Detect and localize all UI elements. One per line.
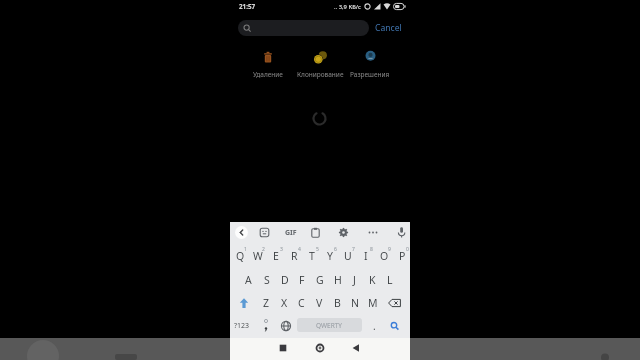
button[interactable]	[367, 227, 379, 238]
button[interactable]: T	[303, 246, 321, 266]
staticText: QWERTY	[316, 321, 343, 330]
staticText: B	[334, 296, 341, 310]
button[interactable]	[338, 227, 349, 238]
staticText: .	[373, 319, 376, 333]
button[interactable]	[234, 293, 254, 313]
button[interactable]: U	[339, 246, 357, 266]
staticText: Cancel	[375, 22, 402, 34]
button[interactable]: G	[311, 270, 328, 290]
staticText: Удаление	[253, 70, 283, 79]
staticText: K	[369, 273, 376, 287]
button[interactable]: J	[346, 270, 363, 290]
button[interactable]: F	[293, 270, 310, 290]
button[interactable]: H	[329, 270, 346, 290]
button[interactable]	[386, 316, 404, 336]
staticText: ?123	[234, 321, 250, 331]
staticText: 2	[262, 246, 265, 253]
staticText: I	[364, 249, 368, 263]
button[interactable]: L	[381, 270, 398, 290]
staticText: Разрешения	[350, 70, 390, 79]
button[interactable]	[310, 338, 330, 360]
staticText: T	[309, 249, 315, 263]
button[interactable]: O	[375, 246, 393, 266]
button[interactable]: N	[346, 293, 363, 313]
button[interactable]: D	[276, 270, 293, 290]
button[interactable]: Удаление	[244, 48, 292, 79]
staticText: U	[344, 249, 352, 263]
staticText: O	[380, 249, 389, 263]
button[interactable]: Cancel	[372, 21, 404, 35]
staticText: 1	[244, 246, 247, 253]
staticText: R	[291, 249, 298, 263]
staticText: 5	[316, 246, 319, 253]
staticText: E	[273, 249, 279, 263]
staticText: 7	[352, 246, 355, 253]
button[interactable]: K	[364, 270, 381, 290]
staticText: G	[316, 273, 324, 287]
button[interactable]: GIF	[282, 227, 300, 238]
staticText: Y	[327, 249, 333, 263]
button[interactable]: R	[285, 246, 303, 266]
staticText: Z	[263, 296, 270, 310]
staticText: L	[387, 273, 393, 287]
staticText: P	[399, 249, 406, 263]
button[interactable]	[235, 226, 248, 239]
button[interactable]: A	[240, 270, 257, 290]
button[interactable]: W	[249, 246, 267, 266]
staticText: M	[368, 296, 378, 310]
staticText: Q	[236, 249, 245, 263]
staticText: GIF	[285, 228, 297, 238]
button[interactable]	[259, 227, 270, 238]
button[interactable]: M	[364, 293, 381, 313]
button[interactable]: QWERTY	[297, 318, 362, 332]
staticText: F	[299, 273, 305, 287]
staticText: W	[253, 249, 263, 263]
staticText: A	[245, 273, 252, 287]
button[interactable]: E	[267, 246, 285, 266]
button[interactable]: V	[311, 293, 328, 313]
button[interactable]: ?123	[232, 316, 252, 336]
button[interactable]: S	[258, 270, 275, 290]
button[interactable]	[277, 316, 295, 336]
staticText: Клонирование	[297, 70, 344, 79]
button[interactable]: B	[329, 293, 346, 313]
staticText: S	[264, 273, 270, 287]
button[interactable]	[238, 20, 369, 36]
staticText: 8	[370, 246, 373, 253]
staticText: V	[316, 296, 323, 310]
button[interactable]: I	[357, 246, 375, 266]
button[interactable]	[273, 338, 293, 360]
staticText: 4	[298, 246, 301, 253]
staticText: 0	[406, 246, 409, 253]
button[interactable]	[258, 316, 274, 336]
button[interactable]	[384, 293, 406, 313]
staticText: D	[281, 273, 289, 287]
staticText: X	[281, 296, 288, 310]
staticText: 21:57	[239, 2, 256, 11]
button[interactable]: Q	[231, 246, 249, 266]
staticText: 3	[280, 246, 283, 253]
staticText: C	[298, 296, 305, 310]
button[interactable]: Разрешения	[346, 48, 394, 79]
staticText: 6	[334, 246, 337, 253]
staticText: 9	[388, 246, 391, 253]
button[interactable]: C	[293, 293, 310, 313]
staticText: N	[351, 296, 359, 310]
staticText: H	[334, 273, 342, 287]
button[interactable]: Y	[321, 246, 339, 266]
button[interactable]: P	[393, 246, 411, 266]
button[interactable]	[310, 227, 321, 238]
staticText: ‥ 3,9 КБ/с	[334, 3, 361, 11]
button[interactable]: Z	[258, 293, 275, 313]
staticText: J	[353, 273, 356, 287]
button[interactable]: .	[367, 316, 382, 336]
button[interactable]	[396, 226, 407, 239]
button[interactable]: X	[276, 293, 293, 313]
button[interactable]	[346, 338, 366, 360]
button[interactable]: Клонирование	[294, 48, 346, 79]
